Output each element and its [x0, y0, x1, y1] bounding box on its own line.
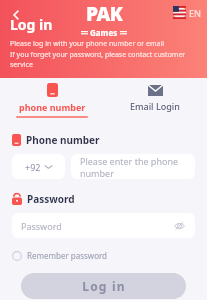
- staticText: Phone number: [26, 133, 100, 147]
- button[interactable]: Password: [12, 213, 195, 238]
- staticText: +92: [25, 161, 41, 173]
- staticText: PAK: [86, 1, 123, 27]
- staticText: Log in: [82, 278, 126, 294]
- staticText: Email Login: [130, 100, 180, 112]
- staticText: Please log in with your phone number or …: [10, 39, 165, 49]
- button[interactable]: Remember password: [12, 250, 108, 261]
- button[interactable]: Show password: [172, 219, 186, 233]
- button[interactable]: Log in: [21, 273, 186, 299]
- staticText: Remember password: [27, 250, 108, 261]
- staticText: If you forget your password, please cont…: [10, 50, 207, 70]
- button[interactable]: phone number: [0, 78, 103, 123]
- staticText: Log in: [10, 15, 53, 34]
- button[interactable]: Language English: [173, 6, 201, 19]
- staticText: Password: [27, 192, 75, 206]
- button[interactable]: +92: [12, 154, 65, 179]
- staticText: Games: [90, 27, 118, 38]
- staticText: Password: [21, 220, 172, 232]
- staticText: EN: [189, 7, 201, 19]
- button[interactable]: Back: [4, 3, 28, 27]
- staticText: Please enter the phone number: [80, 155, 195, 179]
- button[interactable]: Please enter the phone number: [71, 154, 195, 179]
- button[interactable]: Email Login: [103, 78, 207, 123]
- staticText: phone number: [19, 101, 86, 113]
